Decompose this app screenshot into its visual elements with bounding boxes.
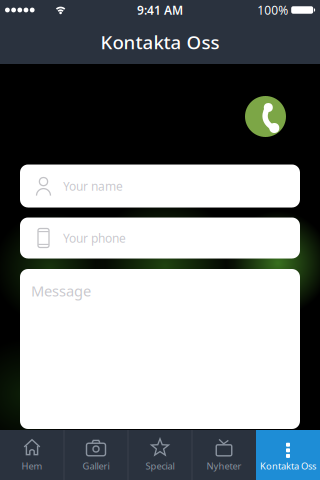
staticText: Kontakta Oss (260, 460, 316, 472)
button[interactable]: Your phone (20, 217, 300, 258)
staticText: 100% (257, 2, 288, 18)
staticText: Kontakta Oss (100, 30, 219, 54)
staticText: 9:41 AM (137, 2, 183, 18)
staticText: Special (145, 460, 174, 472)
button[interactable] (245, 96, 286, 137)
staticText: Hem (21, 460, 42, 472)
staticText: Message (31, 281, 91, 300)
staticText: Your phone (63, 230, 126, 246)
button[interactable]: Special (128, 430, 192, 480)
button[interactable]: Kontakta Oss (256, 430, 320, 480)
button[interactable]: Message (20, 269, 300, 429)
staticText: Galleri (82, 460, 109, 472)
staticText: Your name (63, 178, 123, 194)
button[interactable]: Nyheter (192, 430, 256, 480)
button[interactable]: Hem (0, 430, 64, 480)
button[interactable]: Your name (20, 164, 300, 207)
button[interactable]: Galleri (64, 430, 128, 480)
staticText: Nyheter (206, 460, 241, 472)
